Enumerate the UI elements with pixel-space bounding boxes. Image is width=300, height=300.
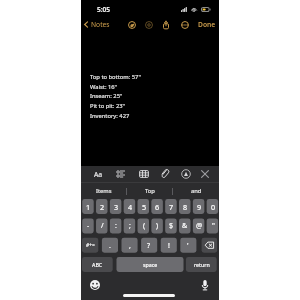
button[interactable]: , xyxy=(122,238,138,253)
button[interactable]: 4 xyxy=(124,199,136,214)
staticText: Top xyxy=(145,187,155,195)
staticText: ( xyxy=(143,221,146,231)
staticText: . xyxy=(109,241,111,251)
button[interactable]: 1 xyxy=(82,199,94,214)
button[interactable]: Backspace xyxy=(202,238,218,253)
button[interactable]: Items xyxy=(81,183,127,199)
staticText: 5 xyxy=(142,202,147,212)
staticText: 4 xyxy=(128,202,133,212)
staticText: 9 xyxy=(197,202,202,212)
staticText: 8 xyxy=(183,202,188,212)
staticText: , xyxy=(129,241,131,251)
staticText: Pit to pit: 23" xyxy=(90,102,125,110)
button[interactable]: More xyxy=(179,19,190,30)
staticText: #+= xyxy=(86,242,95,249)
staticText: $ xyxy=(169,221,174,231)
staticText: ; xyxy=(129,221,131,231)
button[interactable]: space xyxy=(117,257,184,272)
button[interactable]: Done xyxy=(198,20,216,29)
staticText: ABC xyxy=(92,261,103,268)
button[interactable]: @ xyxy=(193,218,205,233)
staticText: Waist: 16" xyxy=(90,83,117,91)
staticText: Notes xyxy=(91,20,110,29)
staticText: - xyxy=(87,221,90,231)
button[interactable]: Markup xyxy=(180,168,192,180)
button[interactable]: Attach xyxy=(159,168,171,180)
button[interactable]: Markup xyxy=(126,19,137,30)
button[interactable]: ) xyxy=(151,218,163,233)
button[interactable]: Table xyxy=(138,168,150,180)
staticText: ' xyxy=(187,241,189,251)
staticText: / xyxy=(101,221,104,231)
button[interactable]: ' xyxy=(180,238,196,253)
button[interactable]: 9 xyxy=(193,199,205,214)
button[interactable]: Text format xyxy=(92,168,104,180)
staticText: Top to bottom: 57" xyxy=(90,73,141,81)
staticText: " xyxy=(212,221,215,231)
button[interactable]: Close keyboard xyxy=(199,168,211,180)
staticText: 3 xyxy=(114,202,119,212)
staticText: & xyxy=(182,221,188,231)
staticText: Inseam: 25" xyxy=(90,92,123,100)
button[interactable]: 0 xyxy=(207,199,219,214)
staticText: 2 xyxy=(100,202,105,212)
button[interactable]: and xyxy=(173,183,219,199)
staticText: ! xyxy=(168,241,170,251)
button[interactable]: ? xyxy=(141,238,157,253)
button[interactable]: Emoji xyxy=(89,279,101,291)
staticText: space xyxy=(143,261,158,268)
button[interactable]: Dictation xyxy=(199,279,211,291)
button[interactable]: Notes xyxy=(84,18,110,31)
button[interactable]: Camera xyxy=(143,19,154,30)
staticText: 0 xyxy=(211,202,216,212)
button[interactable]: 7 xyxy=(165,199,177,214)
button[interactable]: return xyxy=(186,257,217,272)
staticText: 6 xyxy=(155,202,160,212)
button[interactable]: - xyxy=(82,218,94,233)
staticText: 1 xyxy=(86,202,91,212)
button[interactable]: & xyxy=(179,218,191,233)
staticText: 5:05 xyxy=(97,5,111,14)
button[interactable]: ABC xyxy=(82,257,113,272)
button[interactable]: 5 xyxy=(138,199,150,214)
button[interactable]: / xyxy=(96,218,108,233)
button[interactable]: 3 xyxy=(110,199,122,214)
button[interactable]: Checklist xyxy=(115,168,127,180)
staticText: @ xyxy=(196,221,203,231)
button[interactable]: 6 xyxy=(151,199,163,214)
button[interactable]: Share xyxy=(160,19,171,30)
staticText: : xyxy=(115,221,117,231)
staticText: Aa xyxy=(94,170,103,179)
button[interactable]: ( xyxy=(138,218,150,233)
staticText: ? xyxy=(147,241,151,251)
button[interactable]: . xyxy=(102,238,118,253)
staticText: return xyxy=(194,261,210,268)
button[interactable]: ! xyxy=(161,238,177,253)
button[interactable]: " xyxy=(207,218,219,233)
button[interactable]: 2 xyxy=(96,199,108,214)
staticText: Items xyxy=(96,187,112,195)
staticText: 7 xyxy=(169,202,174,212)
staticText: and xyxy=(191,187,202,195)
button[interactable]: 8 xyxy=(179,199,191,214)
button[interactable]: #+= xyxy=(82,238,98,253)
button[interactable]: $ xyxy=(165,218,177,233)
button[interactable]: : xyxy=(110,218,122,233)
staticText: Inventory: 427 xyxy=(90,112,130,120)
button[interactable]: Top xyxy=(127,183,173,199)
staticText: ) xyxy=(156,221,159,231)
button[interactable]: ; xyxy=(124,218,136,233)
